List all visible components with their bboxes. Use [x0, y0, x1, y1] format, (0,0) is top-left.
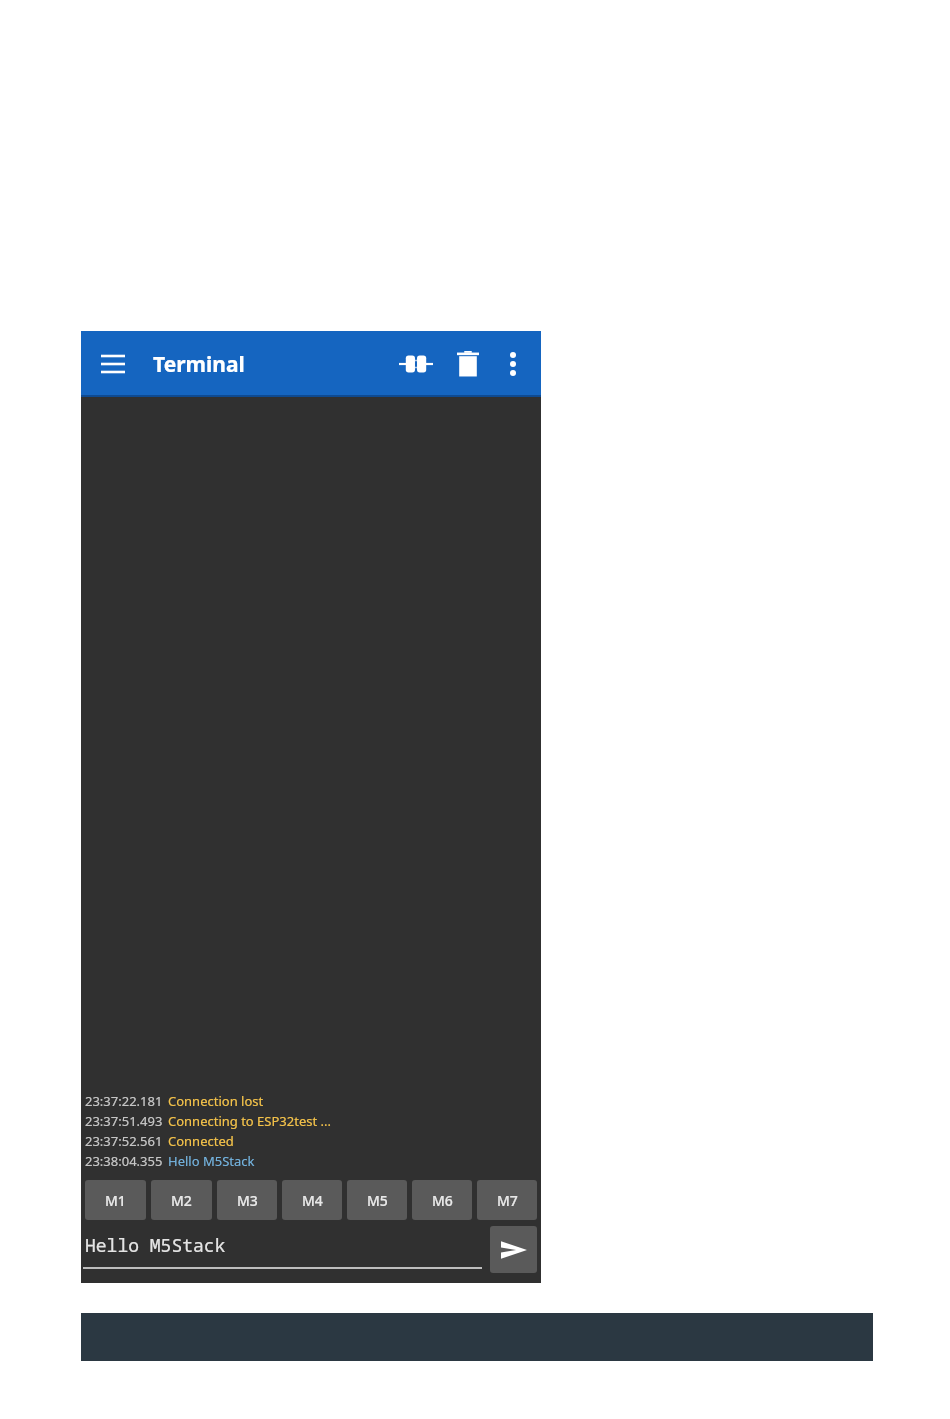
button[interactable]: M4 — [282, 1180, 342, 1220]
button[interactable]: Connect — [393, 341, 439, 387]
staticText: 23:37:52.561 — [85, 1132, 163, 1150]
staticText: M1 — [105, 1191, 126, 1210]
staticText: Hello M5Stack — [85, 1233, 226, 1258]
staticText: Connected — [168, 1132, 234, 1150]
staticText: M7 — [497, 1191, 518, 1210]
button[interactable]: Clear — [445, 341, 491, 387]
button[interactable]: Hello M5Stack — [83, 1223, 482, 1275]
button[interactable]: M2 — [151, 1180, 212, 1220]
button[interactable]: More options — [491, 342, 535, 386]
staticText: Hello M5Stack — [168, 1152, 255, 1170]
staticText: Connecting to ESP32test ... — [168, 1112, 331, 1130]
button[interactable]: M3 — [217, 1180, 277, 1220]
staticText: M6 — [432, 1191, 453, 1210]
staticText: M2 — [171, 1191, 192, 1210]
staticText: Connection lost — [168, 1092, 264, 1110]
staticText: M3 — [237, 1191, 258, 1210]
button[interactable]: M5 — [347, 1180, 407, 1220]
staticText: 23:38:04.355 — [85, 1152, 163, 1170]
staticText: M4 — [302, 1191, 323, 1210]
staticText: M5 — [367, 1191, 388, 1210]
button[interactable]: M7 — [477, 1180, 537, 1220]
staticText: Terminal — [153, 350, 245, 379]
button[interactable]: Send — [490, 1226, 537, 1273]
button[interactable]: M6 — [412, 1180, 472, 1220]
staticText: 23:37:51.493 — [85, 1112, 163, 1130]
staticText: 23:37:22.181 — [85, 1092, 163, 1110]
button[interactable]: M1 — [85, 1180, 146, 1220]
button[interactable]: Open navigation drawer — [91, 342, 135, 386]
